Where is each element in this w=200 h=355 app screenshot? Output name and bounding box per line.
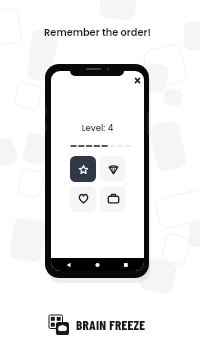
staticText: Level: 4: [51, 122, 144, 134]
button[interactable]: Briefcase: [100, 186, 126, 212]
button[interactable]: Heart: [70, 186, 96, 212]
button[interactable]: Close: [131, 74, 143, 86]
staticText: Remember the order!: [44, 26, 151, 40]
staticText: BRAIN FREEZE: [76, 317, 146, 333]
button[interactable]: Star: [70, 156, 96, 182]
button[interactable]: Diamond: [100, 156, 126, 182]
